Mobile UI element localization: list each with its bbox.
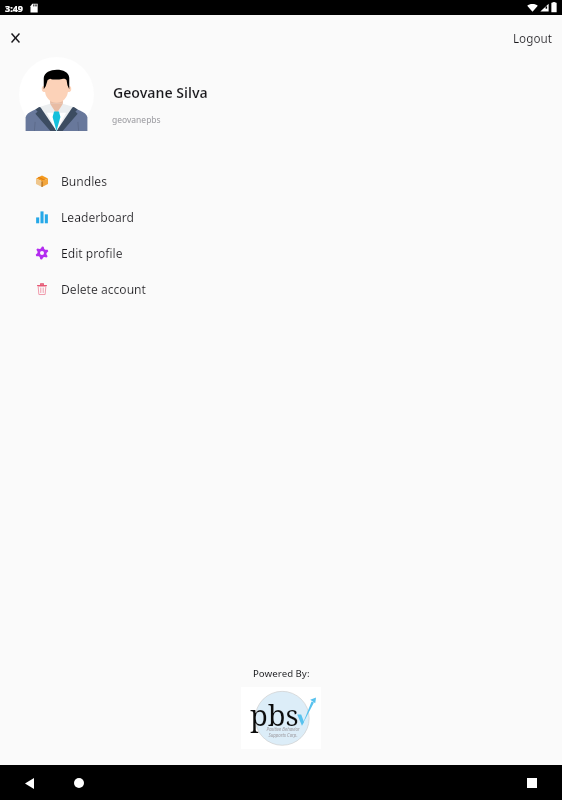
- staticText: pbs: [250, 695, 299, 734]
- staticText: Logout: [513, 30, 552, 46]
- staticText: Powered By:: [253, 667, 310, 680]
- staticText: Positive Behavior Supports Corp.: [266, 726, 300, 738]
- button[interactable]: Recent apps: [517, 768, 547, 798]
- staticText: Leaderboard: [61, 209, 134, 225]
- staticText: Bundles: [61, 173, 107, 189]
- button[interactable]: Close: [0, 22, 30, 53]
- button[interactable]: Delete account: [0, 271, 562, 307]
- staticText: Edit profile: [61, 245, 123, 261]
- button[interactable]: Bundles: [0, 163, 562, 199]
- button[interactable]: Back: [14, 768, 44, 798]
- staticText: Delete account: [61, 281, 146, 297]
- staticText: geovanepbs: [112, 114, 161, 126]
- staticText: Geovane Silva: [113, 83, 208, 102]
- button[interactable]: Logout: [499, 24, 562, 52]
- button[interactable]: Home: [64, 768, 94, 798]
- button[interactable]: Edit profile: [0, 235, 562, 271]
- button[interactable]: Leaderboard: [0, 199, 562, 235]
- staticText: 3:49: [5, 2, 23, 14]
